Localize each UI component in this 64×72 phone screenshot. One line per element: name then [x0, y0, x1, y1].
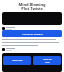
staticText: Read now	[12, 59, 23, 62]
button[interactable]: Continue reading	[2, 30, 62, 37]
button[interactable]: Save for later	[33, 56, 61, 65]
staticText: Save for later	[43, 58, 52, 64]
staticText: Mind Blowing Plot Twists	[0, 2, 64, 11]
staticText: Continue reading	[22, 32, 43, 35]
button[interactable]	[2, 12, 62, 25]
button[interactable]: Read now	[3, 56, 31, 65]
